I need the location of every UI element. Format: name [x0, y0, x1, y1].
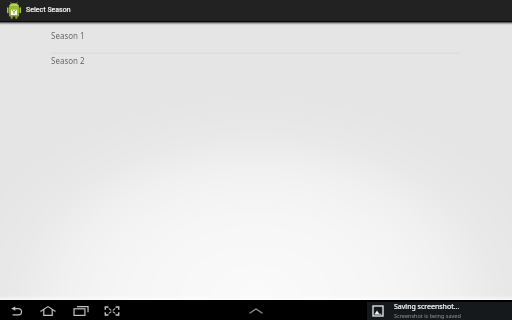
button[interactable]: Show navigation	[244, 305, 268, 317]
staticText: Select Season	[26, 5, 71, 14]
staticText: Season 2	[51, 55, 85, 66]
button[interactable]: Exit full screen	[96, 300, 128, 320]
button[interactable]: Season 2	[0, 52, 512, 82]
staticText: Saving screenshot…	[394, 302, 460, 312]
staticText: Season 1	[51, 30, 85, 41]
button[interactable]: Season 1	[0, 22, 512, 52]
button[interactable]: Recent apps	[65, 300, 97, 320]
button[interactable]: Home	[32, 300, 64, 320]
button[interactable]: Back	[2, 300, 34, 320]
button[interactable]: Select Season	[0, 0, 512, 21]
staticText: Screenshot is being saved	[394, 312, 461, 319]
button[interactable]: Saving screenshot…	[367, 302, 512, 320]
